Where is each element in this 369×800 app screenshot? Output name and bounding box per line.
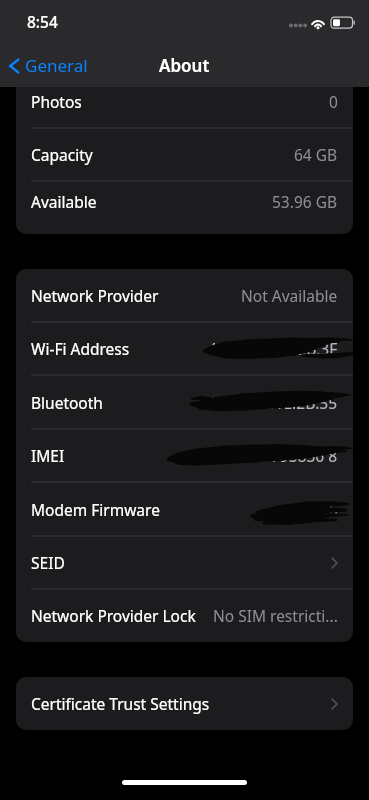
button[interactable]: Available	[16, 181, 353, 222]
button[interactable]: Photos	[16, 87, 353, 128]
staticText: IMEI	[31, 445, 65, 466]
staticText: 4C:73:7A:1E:2B:3F	[208, 338, 338, 359]
staticText: 8:54	[27, 11, 58, 32]
staticText: 0	[329, 91, 338, 112]
staticText: No SIM restricti...	[213, 605, 338, 626]
staticText: Bluetooth	[31, 392, 103, 413]
button[interactable]: IMEI	[16, 429, 353, 482]
staticText: SEID	[31, 552, 65, 573]
staticText: About	[159, 54, 210, 77]
staticText: Capacity	[31, 144, 93, 165]
button[interactable]: Certificate Trust Settings	[16, 677, 353, 730]
button[interactable]: Network Provider	[16, 269, 353, 322]
staticText: 64 GB	[294, 144, 338, 165]
staticText: Network Provider Lock	[31, 605, 196, 626]
staticText: 53.96 GB	[272, 191, 338, 212]
staticText: 4C:73:7A:1E:2B:55	[207, 392, 338, 413]
button[interactable]: SEID	[16, 536, 353, 589]
button[interactable]: General	[0, 50, 96, 81]
staticText: 35 286610 795836 8	[192, 445, 338, 466]
staticText: General	[25, 54, 88, 77]
staticText: Certificate Trust Settings	[31, 693, 210, 714]
button[interactable]: Bluetooth	[16, 375, 353, 429]
button[interactable]: Wi-Fi Address	[16, 322, 353, 375]
button[interactable]: Capacity	[16, 128, 353, 181]
button[interactable]: Modem Firmware	[16, 482, 353, 536]
staticText: Photos	[31, 91, 82, 112]
staticText: Wi-Fi Address	[31, 338, 130, 359]
staticText: Available	[31, 191, 97, 212]
staticText: Network Provider	[31, 285, 159, 306]
button[interactable]: Network Provider Lock	[16, 589, 353, 642]
staticText: Not Available	[241, 285, 338, 306]
staticText: Modem Firmware	[31, 499, 160, 520]
staticText: 4.02.06	[285, 499, 338, 520]
